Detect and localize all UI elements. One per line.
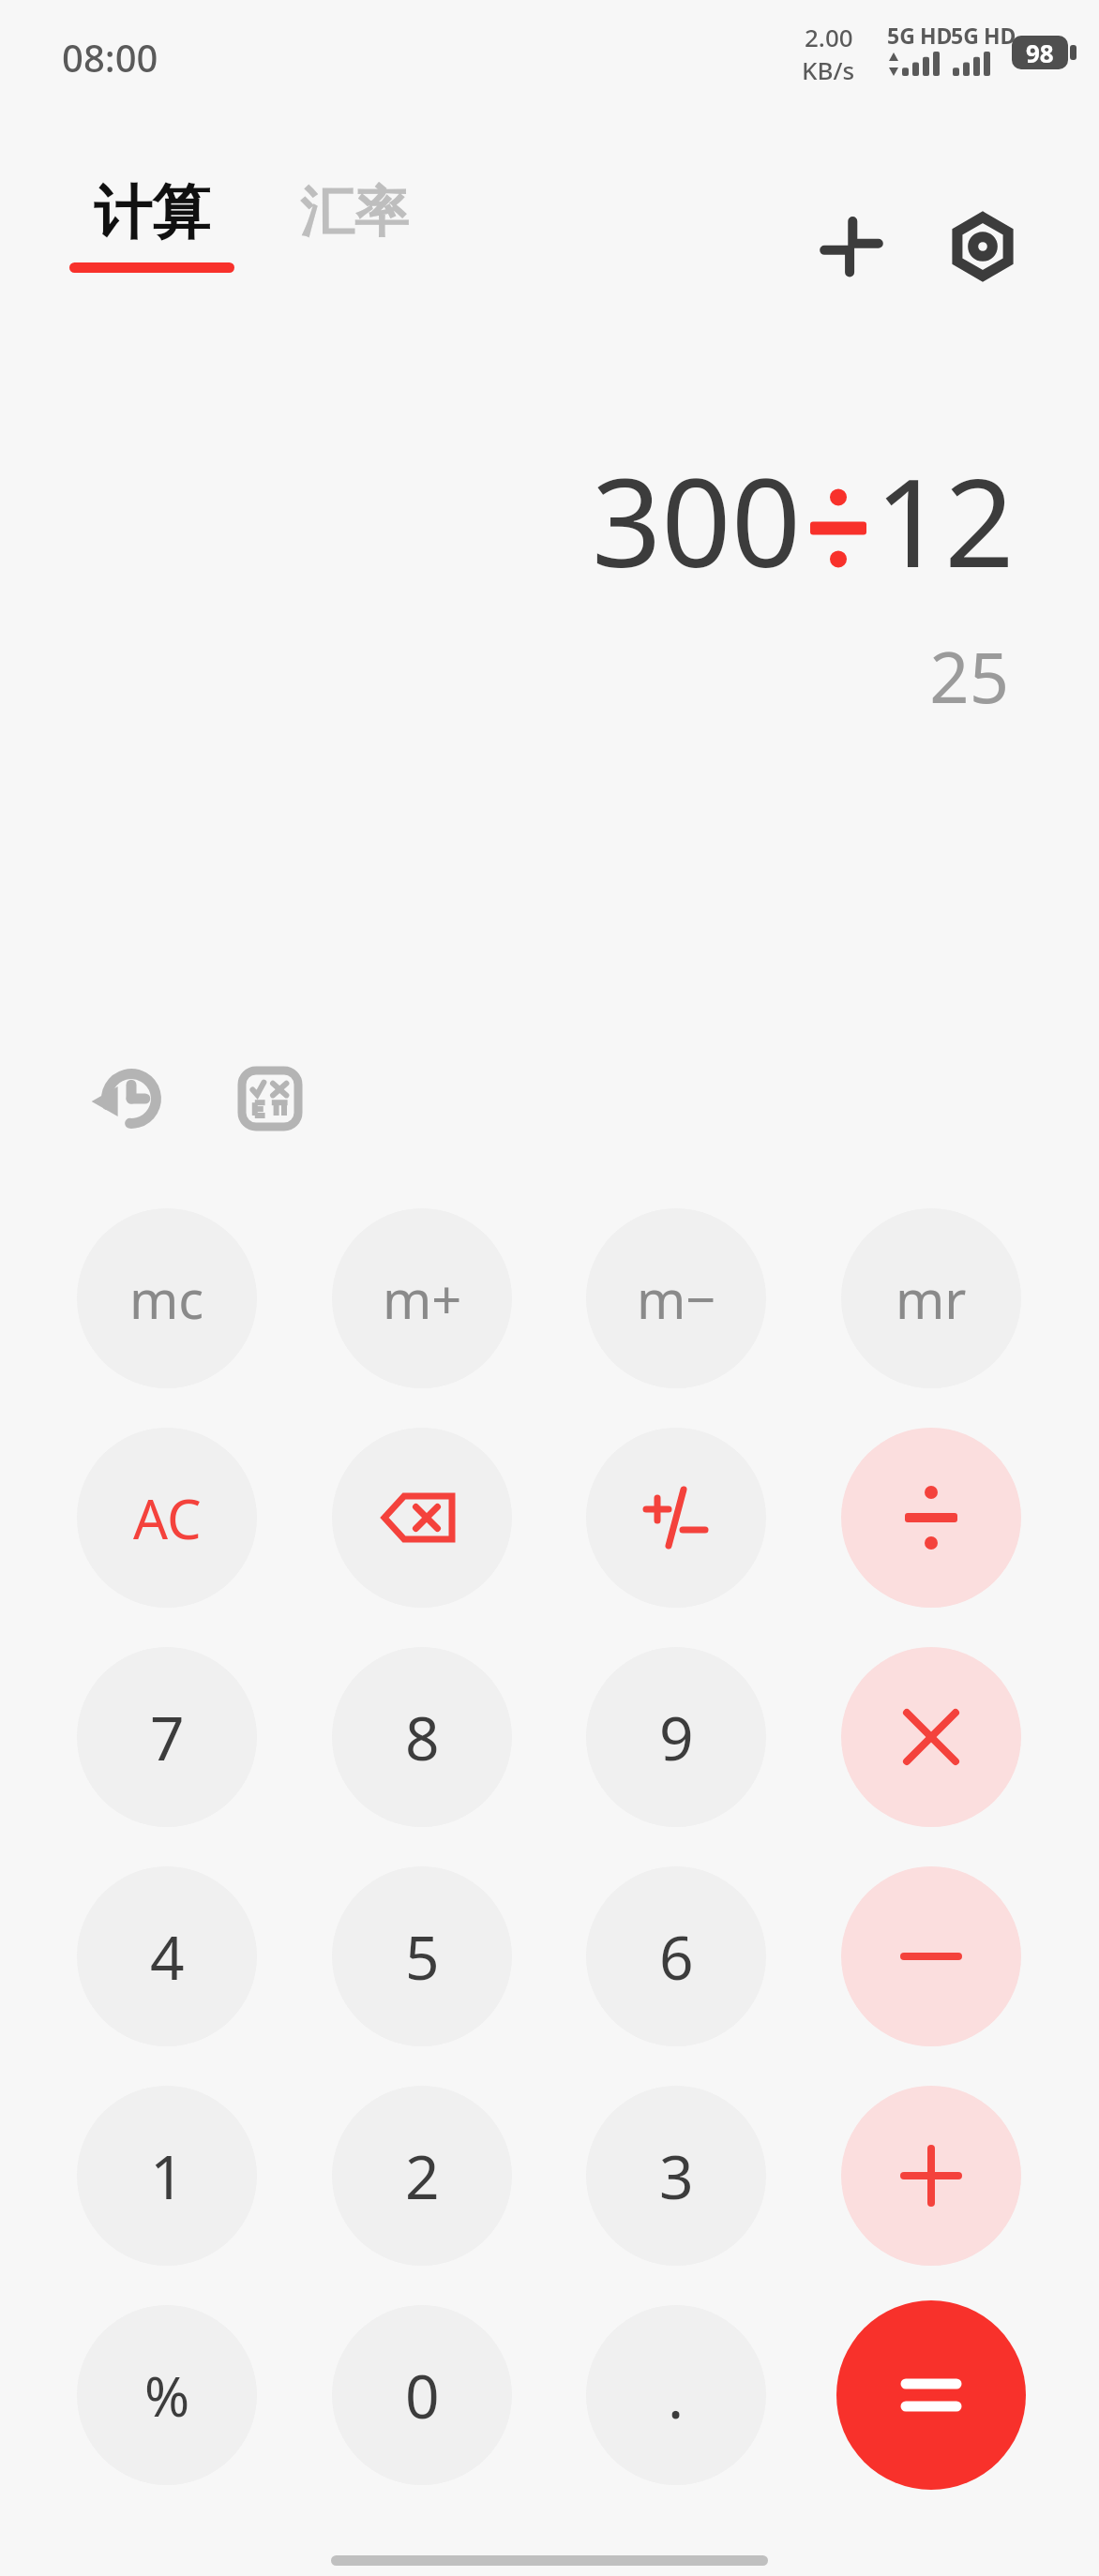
button[interactable]: Equals [836, 2300, 1026, 2490]
staticText: . [668, 2355, 685, 2436]
button[interactable]: 0 [332, 2305, 512, 2485]
staticText: 3 [659, 2135, 694, 2217]
button[interactable]: History [83, 1050, 180, 1147]
staticText: AC [133, 1481, 202, 1555]
button[interactable]: Divide [841, 1428, 1021, 1608]
button[interactable]: % [77, 2305, 257, 2485]
button[interactable]: Add [841, 2086, 1021, 2266]
button[interactable]: 1 [77, 2086, 257, 2266]
button[interactable]: mc [77, 1208, 257, 1388]
staticText: KB/s [802, 53, 855, 86]
staticText: 98 [1026, 37, 1054, 69]
staticText: 5G [887, 21, 915, 50]
staticText: % [144, 2359, 190, 2433]
button[interactable]: Subtract [841, 1866, 1021, 2046]
staticText: HD [984, 21, 1016, 50]
staticText: 汇率 [300, 178, 409, 247]
button[interactable]: Toggle sign [586, 1428, 766, 1608]
staticText: 2.00 [805, 21, 853, 53]
staticText: 计算 [94, 176, 210, 249]
button[interactable]: mr [841, 1208, 1021, 1388]
staticText: 8 [405, 1697, 440, 1778]
button[interactable]: 计算 [66, 176, 238, 273]
staticText: 6 [659, 1916, 694, 1998]
staticText: 5G [951, 21, 979, 50]
button[interactable]: Multiply [841, 1647, 1021, 1827]
button[interactable]: 9 [586, 1647, 766, 1827]
staticText: 300 [592, 437, 802, 603]
button[interactable]: Expand [800, 195, 903, 298]
staticText: 9 [659, 1697, 694, 1778]
staticText: 08:00 [62, 32, 158, 82]
button[interactable]: 8 [332, 1647, 512, 1827]
button[interactable]: 汇率 [294, 178, 414, 247]
button[interactable]: 2 [332, 2086, 512, 2266]
staticText: 4 [150, 1916, 185, 1998]
button[interactable]: 7 [77, 1647, 257, 1827]
button[interactable]: AC [77, 1428, 257, 1608]
staticText: 25 [0, 629, 1009, 724]
button[interactable]: m− [586, 1208, 766, 1388]
staticText: 12 [875, 437, 1015, 603]
staticText: HD [920, 21, 953, 50]
staticText: 5 [405, 1916, 440, 1998]
staticText: 2 [405, 2135, 440, 2217]
button[interactable]: 3 [586, 2086, 766, 2266]
staticText: 0 [405, 2355, 440, 2436]
staticText: 1 [150, 2135, 185, 2217]
button[interactable]: . [586, 2305, 766, 2485]
staticText: m− [637, 1263, 716, 1334]
button[interactable]: 6 [586, 1866, 766, 2046]
staticText: mr [896, 1263, 967, 1334]
button[interactable]: m+ [332, 1208, 512, 1388]
staticText: mc [129, 1263, 204, 1334]
button[interactable]: Scientific mode [221, 1050, 319, 1147]
button[interactable]: Backspace [332, 1428, 512, 1608]
button[interactable]: 4 [77, 1866, 257, 2046]
button[interactable]: Settings [931, 195, 1034, 298]
staticText: 7 [150, 1697, 185, 1778]
button[interactable]: 5 [332, 1866, 512, 2046]
staticText: m+ [383, 1263, 462, 1334]
